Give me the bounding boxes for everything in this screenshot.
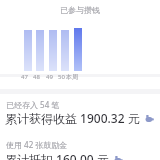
button[interactable]: 收益说明 bbox=[145, 114, 154, 123]
staticText: 本周 bbox=[66, 73, 78, 81]
staticText: 累计获得收益 1900.32 元 bbox=[5, 110, 140, 126]
staticText: 48 bbox=[33, 73, 40, 81]
staticText: 使用 42 张鼓励金 bbox=[6, 139, 68, 150]
staticText: 已经存入 54 笔 bbox=[6, 99, 60, 110]
staticText: 49 bbox=[46, 73, 53, 81]
button[interactable]: 抵扣说明 bbox=[114, 155, 123, 160]
staticText: 50 bbox=[58, 73, 65, 81]
staticText: 累计抵扣 160.00 元 bbox=[5, 151, 109, 160]
staticText: 已参与攒钱 bbox=[60, 5, 100, 15]
staticText: 47 bbox=[21, 73, 28, 81]
